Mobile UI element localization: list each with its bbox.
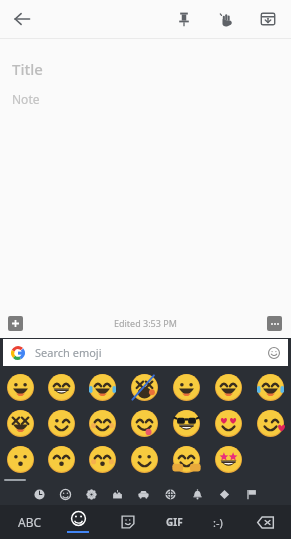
button[interactable]: Emoji <box>165 441 207 477</box>
button[interactable]: Emoji <box>123 405 165 441</box>
button[interactable]: Emoji <box>41 405 82 441</box>
button[interactable]: Emoji <box>123 441 165 477</box>
staticText: Edited 3:53 PM <box>114 317 177 329</box>
button[interactable]: Emoji <box>165 369 207 405</box>
button[interactable]: Recent <box>26 483 52 505</box>
button[interactable]: Emoji <box>249 369 291 405</box>
button[interactable]: Backspace <box>249 506 281 538</box>
staticText: ABC <box>18 514 42 530</box>
button[interactable]: Travel <box>130 483 157 505</box>
button[interactable]: Reminder <box>211 4 241 34</box>
button[interactable]: Emoji <box>59 506 97 538</box>
button[interactable]: Back <box>6 3 38 35</box>
button[interactable]: Emoji <box>0 441 41 477</box>
button[interactable]: Smileys <box>52 483 78 505</box>
button[interactable]: Emoji <box>41 369 82 405</box>
button[interactable]: Emoji <box>207 441 249 477</box>
button[interactable]: Emoji <box>82 405 123 441</box>
staticText: :-) <box>213 515 223 530</box>
button[interactable]: Emoji <box>0 369 41 405</box>
button[interactable]: Emoji <box>82 441 123 477</box>
staticText: Search emoji <box>35 345 102 360</box>
button[interactable]: Emoji <box>82 369 123 405</box>
button[interactable]: Emoji <box>165 405 207 441</box>
button[interactable]: Add <box>3 311 27 335</box>
staticText: Title <box>12 59 43 79</box>
button[interactable]: :-) <box>203 507 233 537</box>
button[interactable]: Emoji <box>249 405 291 441</box>
button[interactable]: Emoji <box>207 369 249 405</box>
button[interactable]: Emoji <box>123 369 165 405</box>
button[interactable]: Search emoji <box>3 339 288 366</box>
button[interactable]: Objects <box>184 483 211 505</box>
button[interactable]: Title <box>12 59 279 79</box>
button[interactable]: More options <box>262 311 286 335</box>
button[interactable]: Archive <box>253 4 283 34</box>
button[interactable]: Emoji <box>0 405 41 441</box>
button[interactable]: Flags <box>238 483 265 505</box>
staticText: GIF <box>166 515 183 529</box>
button[interactable]: Nature <box>78 483 104 505</box>
button[interactable]: Emoji <box>41 441 82 477</box>
button[interactable]: Symbols <box>211 483 238 505</box>
button[interactable]: Food <box>104 483 130 505</box>
button[interactable]: Emoji <box>207 405 249 441</box>
button[interactable]: Activities <box>157 483 184 505</box>
button[interactable]: GIF <box>157 507 191 537</box>
staticText: Note <box>12 91 40 107</box>
button[interactable]: ABC <box>4 507 56 537</box>
button[interactable]: Stickers <box>113 507 143 537</box>
button[interactable]: Pin <box>169 4 199 34</box>
